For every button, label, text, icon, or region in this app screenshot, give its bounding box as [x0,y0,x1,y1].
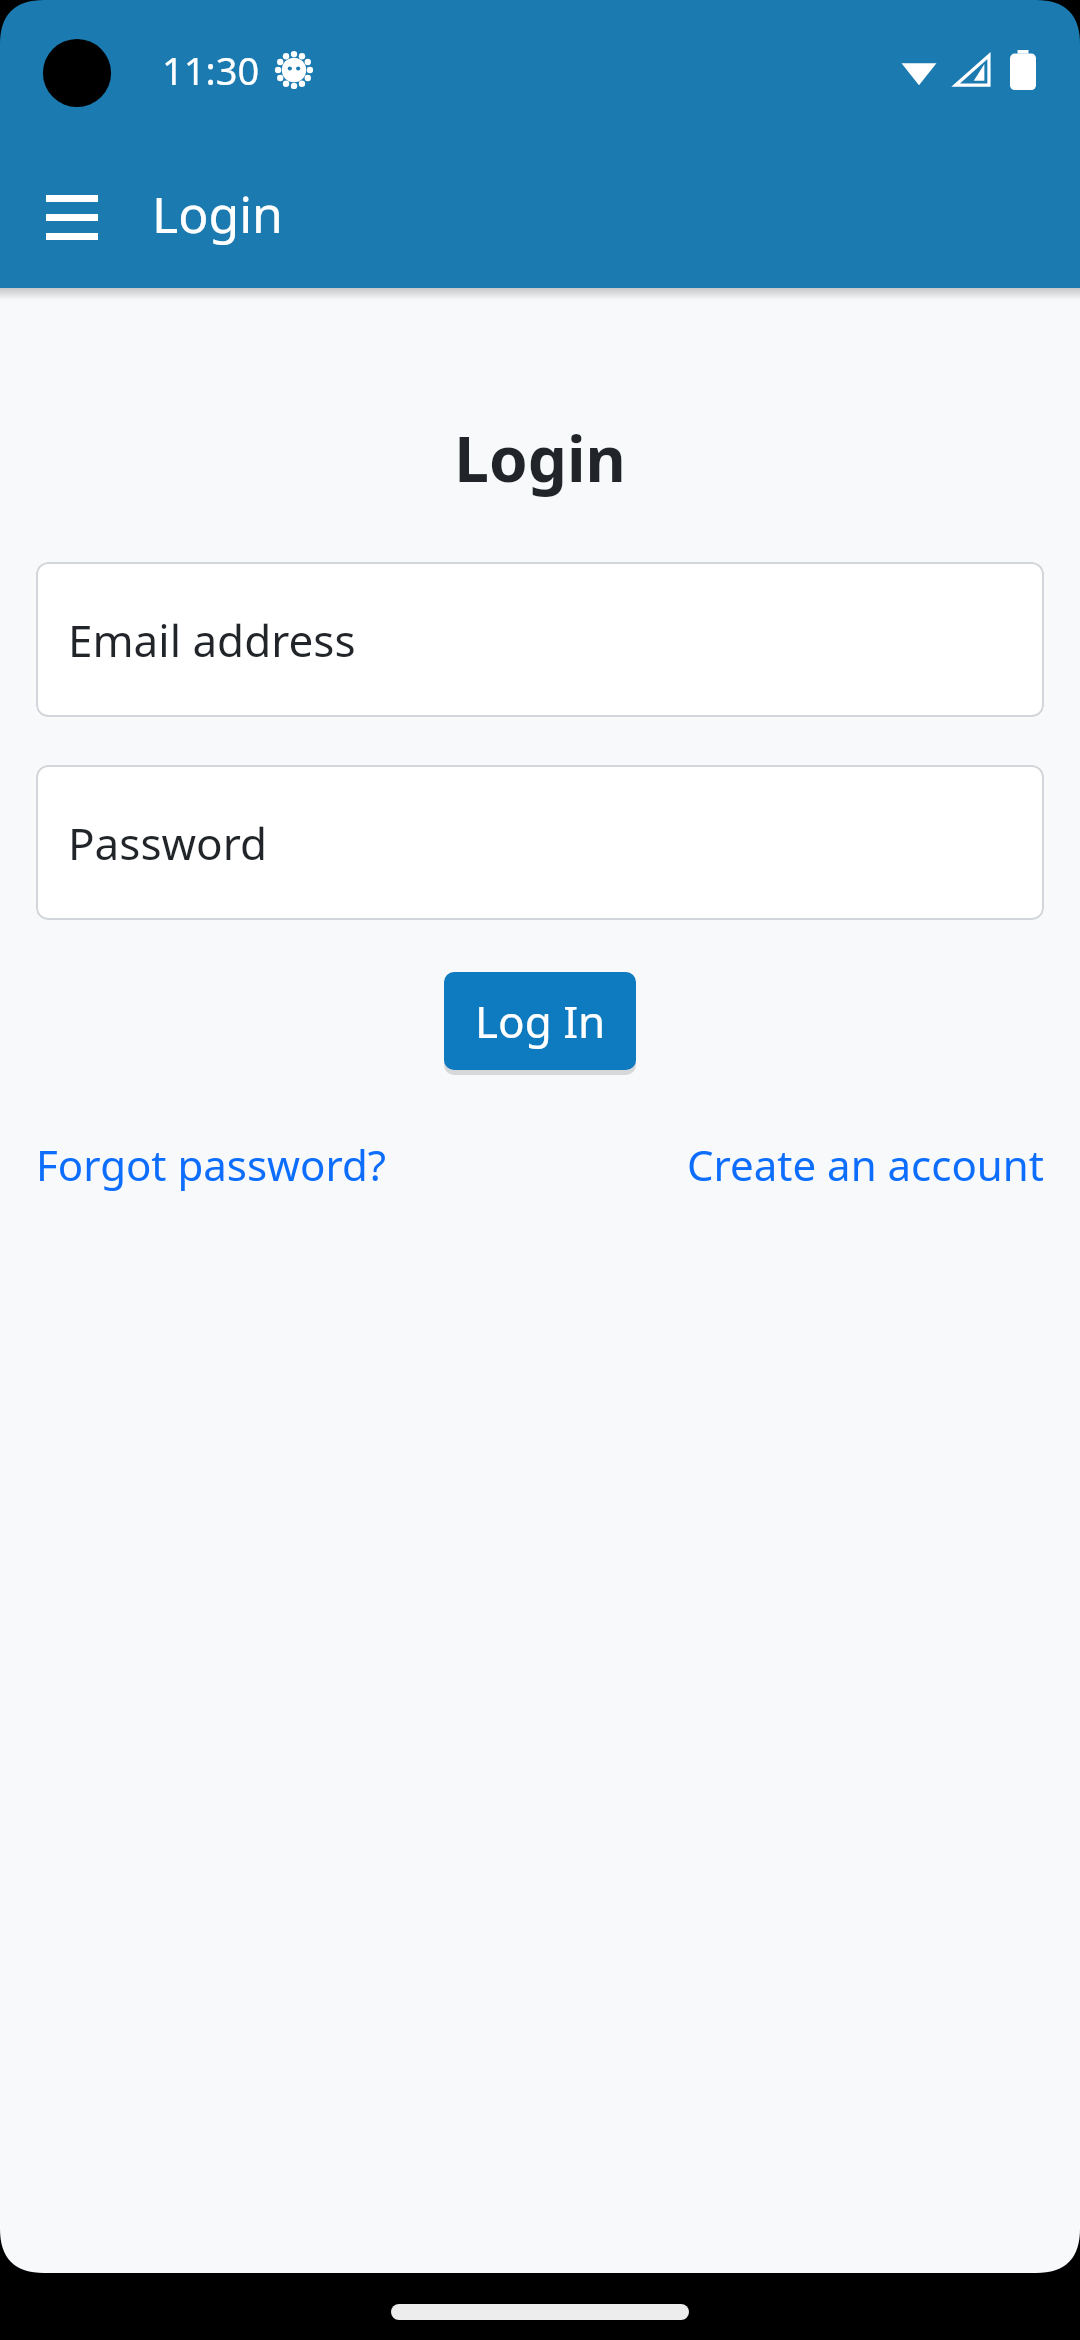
staticText: Password [68,813,268,873]
staticText: Email address [68,610,356,670]
button[interactable]: Log In [444,972,636,1070]
staticText: Log In [475,991,606,1051]
button[interactable]: Email address [36,562,1044,717]
staticText: Create an account [687,1136,1044,1193]
button[interactable]: Open navigation menu [30,172,114,256]
staticText: 11:30 [162,44,260,96]
staticText: Login [0,416,1080,500]
button[interactable]: Password [36,765,1044,920]
button[interactable]: Create an account [687,1136,1044,1193]
staticText: Forgot password? [36,1136,387,1193]
button[interactable]: Forgot password? [36,1136,387,1193]
staticText: Login [152,180,283,248]
